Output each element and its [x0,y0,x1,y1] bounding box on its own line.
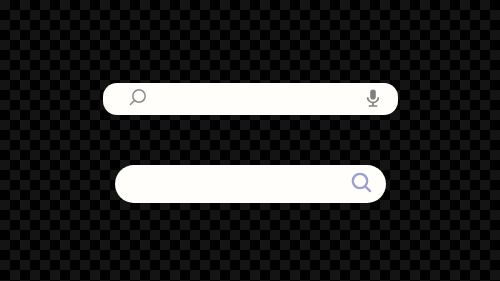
button[interactable] [103,83,398,115]
button[interactable]: Search [127,84,151,108]
button[interactable]: Voice search [362,86,384,112]
button[interactable]: Search [347,169,375,197]
button[interactable] [115,165,386,203]
